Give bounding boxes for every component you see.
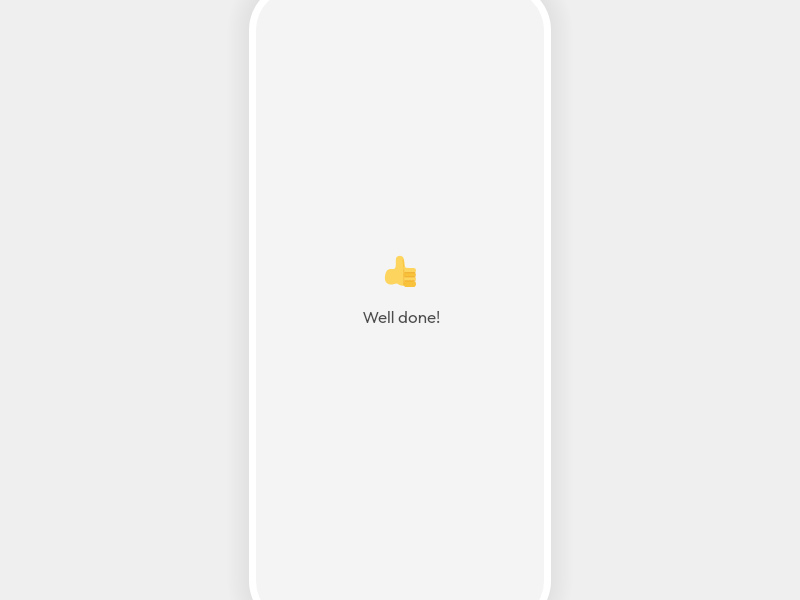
button[interactable]: Well done, task complete <box>0 0 800 590</box>
staticText: Well done! <box>362 306 441 327</box>
